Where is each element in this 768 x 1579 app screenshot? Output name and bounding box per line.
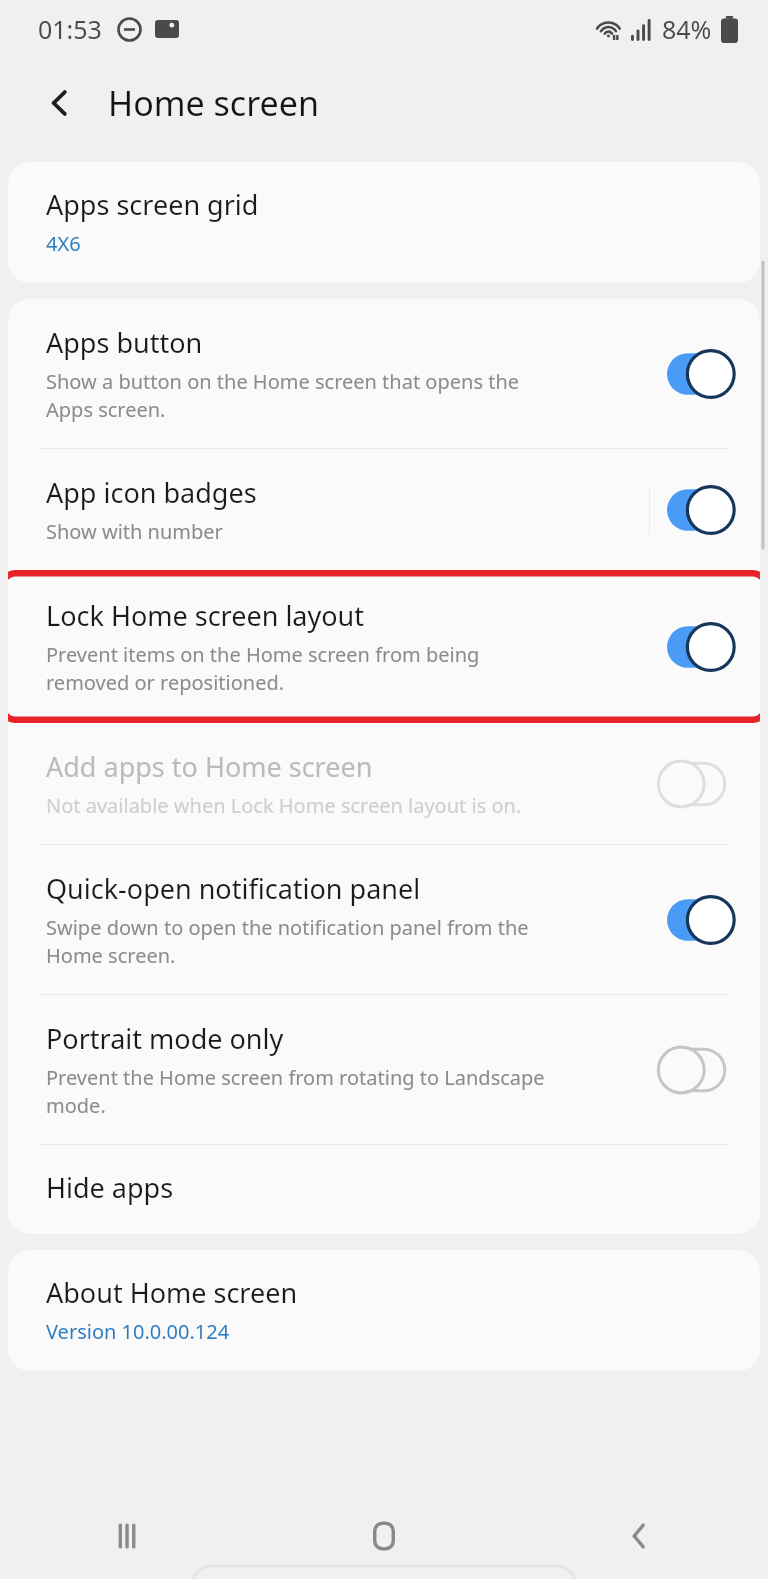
button[interactable]: Switch off bbox=[664, 758, 740, 810]
staticText: Not available when Lock Home screen layo… bbox=[46, 792, 522, 819]
button[interactable]: Portrait mode only bbox=[8, 995, 760, 1144]
button[interactable]: Switch on bbox=[664, 348, 740, 400]
button[interactable]: Apps button bbox=[8, 299, 760, 448]
button[interactable]: Home bbox=[355, 1507, 413, 1565]
staticText: Portrait mode only bbox=[46, 1020, 284, 1057]
button[interactable]: Recent apps bbox=[99, 1507, 157, 1565]
button[interactable]: Hide apps bbox=[8, 1145, 760, 1234]
button[interactable]: Add apps to Home screen bbox=[8, 723, 760, 844]
button[interactable]: Quick-open notification panel bbox=[8, 845, 760, 994]
staticText: About Home screen bbox=[46, 1274, 298, 1311]
button[interactable]: App icon badges bbox=[8, 449, 760, 570]
staticText: Lock Home screen layout bbox=[46, 597, 365, 634]
button[interactable]: Apps screen grid bbox=[8, 162, 760, 283]
staticText: Hide apps bbox=[46, 1169, 174, 1206]
button[interactable]: Switch on bbox=[664, 894, 740, 946]
staticText: Version 10.0.00.124 bbox=[46, 1318, 230, 1345]
button[interactable]: Switch off bbox=[664, 1044, 740, 1096]
staticText: 01:53 bbox=[38, 12, 102, 46]
staticText: Swipe down to open the notification pane… bbox=[46, 914, 529, 969]
staticText: Apps button bbox=[46, 324, 203, 361]
staticText: 84% bbox=[662, 12, 712, 46]
staticText: Prevent items on the Home screen from be… bbox=[46, 641, 480, 696]
button[interactable]: About Home screen bbox=[8, 1250, 760, 1371]
staticText: 4X6 bbox=[46, 230, 81, 257]
staticText: Show with number bbox=[46, 518, 223, 545]
button[interactable]: Switch on bbox=[664, 621, 740, 673]
staticText: Show a button on the Home screen that op… bbox=[46, 368, 520, 423]
button[interactable]: Switch on bbox=[664, 484, 740, 536]
staticText: Home screen bbox=[108, 80, 319, 126]
staticText: App icon badges bbox=[46, 474, 257, 511]
button[interactable]: Navigate up bbox=[32, 75, 88, 131]
staticText: Add apps to Home screen bbox=[46, 748, 373, 785]
staticText: Prevent the Home screen from rotating to… bbox=[46, 1064, 545, 1119]
button[interactable]: Back bbox=[611, 1507, 669, 1565]
staticText: Apps screen grid bbox=[46, 186, 259, 223]
button[interactable]: Lock Home screen layout bbox=[8, 570, 760, 723]
staticText: Quick-open notification panel bbox=[46, 870, 421, 907]
